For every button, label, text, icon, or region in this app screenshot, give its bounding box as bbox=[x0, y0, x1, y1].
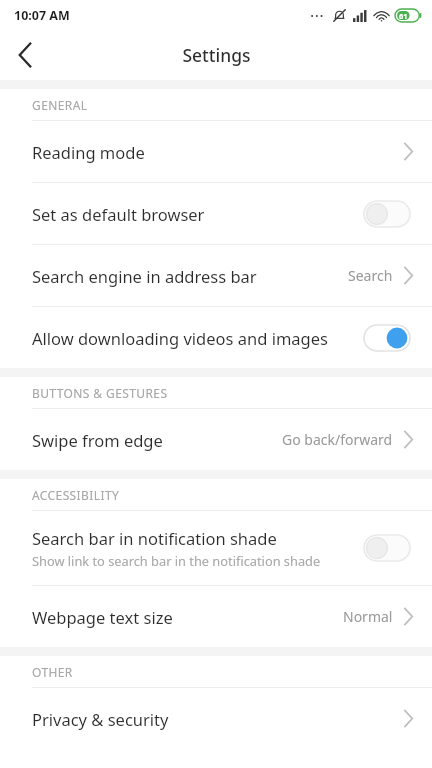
staticText: Set as default browser bbox=[32, 203, 205, 225]
button[interactable]: Back bbox=[0, 30, 50, 80]
staticText: Search bbox=[348, 266, 393, 285]
staticText: GENERAL bbox=[32, 97, 88, 113]
button[interactable]: Toggle off bbox=[364, 535, 410, 561]
staticText: Show link to search bar in the notificat… bbox=[32, 552, 321, 569]
staticText: ACCESSIBILITY bbox=[32, 487, 120, 503]
button[interactable]: Privacy & security bbox=[0, 688, 432, 749]
button[interactable]: Search bar in notification shade bbox=[0, 511, 432, 585]
staticText: Privacy & security bbox=[32, 708, 403, 730]
staticText: 10:07 AM bbox=[14, 7, 70, 24]
button[interactable]: Set as default browser bbox=[0, 183, 432, 244]
button[interactable]: Toggle off bbox=[364, 201, 410, 227]
staticText: Reading mode bbox=[32, 141, 403, 163]
staticText: Swipe from edge bbox=[32, 429, 282, 451]
staticText: Allow downloading videos and images bbox=[32, 327, 328, 349]
button[interactable]: Search engine in address bar bbox=[0, 245, 432, 306]
staticText: Webpage text size bbox=[32, 606, 343, 628]
button[interactable]: Allow downloading videos and images bbox=[0, 307, 432, 368]
button[interactable]: Reading mode bbox=[0, 121, 432, 182]
staticText: 61 bbox=[399, 11, 408, 21]
staticText: Search engine in address bar bbox=[32, 265, 348, 287]
staticText: OTHER bbox=[32, 664, 73, 680]
staticText: BUTTONS & GESTURES bbox=[32, 385, 168, 401]
staticText: Normal bbox=[343, 607, 393, 626]
button[interactable]: Toggle on bbox=[364, 325, 410, 351]
button[interactable]: Swipe from edge bbox=[0, 409, 432, 470]
button[interactable]: Webpage text size bbox=[0, 586, 432, 647]
staticText: Settings bbox=[182, 43, 251, 67]
staticText: Go back/forward bbox=[282, 430, 393, 449]
staticText: Search bar in notification shade bbox=[32, 527, 277, 549]
